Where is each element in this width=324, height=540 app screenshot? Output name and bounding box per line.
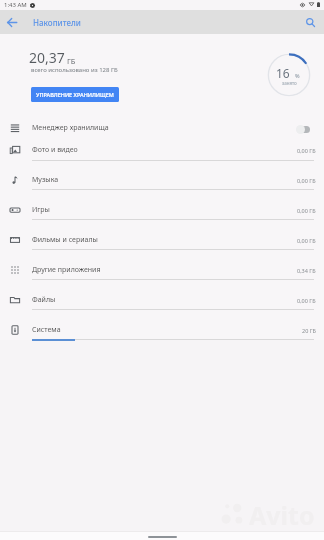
button[interactable]: Музыка: [0, 168, 324, 192]
staticText: 0,00 ГБ: [297, 147, 316, 154]
button[interactable]: Фильмы и сериалы: [0, 228, 324, 252]
button[interactable]: Файлы: [0, 288, 324, 312]
staticText: Система: [32, 325, 61, 335]
staticText: 0,00 ГБ: [297, 297, 316, 304]
staticText: УПРАВЛЕНИЕ ХРАНИЛИЩЕМ: [36, 91, 114, 98]
staticText: Файлы: [32, 295, 56, 305]
staticText: ГБ: [67, 56, 76, 66]
staticText: всего использовано из 128 ГБ: [31, 66, 118, 74]
staticText: 20,37: [29, 48, 65, 67]
button[interactable]: УПРАВЛЕНИЕ ХРАНИЛИЩЕМ: [31, 87, 119, 102]
staticText: 0,00 ГБ: [297, 207, 316, 214]
staticText: Музыка: [32, 175, 59, 185]
staticText: Другие приложения: [32, 265, 101, 275]
button[interactable]: Фото и видео: [0, 138, 324, 162]
button[interactable]: Back: [0, 10, 24, 34]
staticText: 1:43 AM: [4, 1, 27, 9]
staticText: Фото и видео: [32, 145, 78, 155]
button[interactable]: Система: [0, 318, 324, 342]
button[interactable]: Storage manager toggle: [295, 122, 311, 135]
staticText: Накопители: [33, 17, 81, 28]
staticText: Фильмы и сериалы: [32, 235, 98, 245]
staticText: Игры: [32, 205, 50, 215]
staticText: %: [295, 72, 300, 79]
staticText: 20 ГБ: [302, 327, 316, 334]
staticText: 16: [276, 65, 290, 81]
staticText: 0,00 ГБ: [297, 237, 316, 244]
staticText: 0,00 ГБ: [297, 177, 316, 184]
staticText: 0,34 ГБ: [297, 267, 316, 274]
button[interactable]: Игры: [0, 198, 324, 222]
staticText: занято: [282, 80, 297, 86]
button[interactable]: Менеджер хранилища: [0, 116, 324, 140]
staticText: Менеджер хранилища: [32, 123, 109, 133]
button[interactable]: Search: [298, 10, 322, 34]
button[interactable]: Другие приложения: [0, 258, 324, 282]
